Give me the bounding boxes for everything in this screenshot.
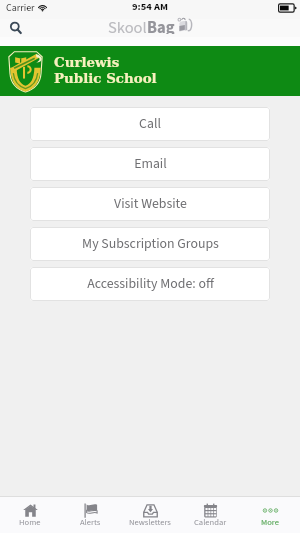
staticText: More [261, 516, 279, 528]
staticText: Email [134, 154, 167, 174]
staticText: My Subscription Groups [82, 234, 219, 254]
staticText: Calendar [194, 516, 227, 528]
staticText: Carrier [6, 1, 35, 15]
staticText: Bag [147, 16, 175, 34]
button[interactable]: Search [7, 19, 25, 37]
button[interactable]: My Subscription Groups [30, 227, 270, 261]
button[interactable]: Home [0, 497, 60, 530]
button[interactable]: Newsletters [120, 497, 180, 530]
staticText: Call [139, 114, 161, 134]
button[interactable]: Calendar [180, 497, 240, 530]
staticText: Home [19, 516, 41, 528]
staticText: Accessibility Mode: off [87, 274, 214, 294]
button[interactable]: Call [30, 107, 270, 141]
button[interactable]: Accessibility Mode: off [30, 267, 270, 301]
staticText: Skool [108, 16, 147, 34]
button[interactable]: Alerts [60, 497, 120, 530]
staticText: Public School [54, 70, 157, 86]
staticText: Curlewis [54, 54, 120, 70]
button[interactable]: Visit Website [30, 187, 270, 221]
staticText: Visit Website [114, 194, 187, 214]
staticText: Alerts [80, 516, 101, 528]
button[interactable]: More [240, 497, 300, 530]
staticText: Newsletters [129, 516, 171, 528]
button[interactable]: Email [30, 147, 270, 181]
staticText: 9:54 AM [132, 0, 168, 14]
